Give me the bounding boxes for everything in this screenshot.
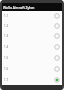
button[interactable]: 1.7: [2, 74, 62, 85]
button[interactable]: 1.5: [2, 52, 62, 63]
staticText: 1.1: [4, 14, 9, 18]
button[interactable]: 1.3: [2, 31, 62, 41]
staticText: Walla Aircraft Zylon: [3, 5, 35, 10]
staticText: 1.6: [4, 67, 9, 71]
staticText: 1.4: [4, 45, 9, 49]
staticText: 1.5: [4, 56, 9, 60]
button[interactable]: 1.4: [2, 41, 62, 52]
button[interactable]: Walla Aircraft Zylon: [2, 3, 62, 11]
staticText: 1.2: [4, 24, 9, 28]
button[interactable]: Toggle status: [54, 44, 60, 50]
button[interactable]: Toggle status: [54, 13, 60, 19]
button[interactable]: Toggle status: [54, 77, 60, 83]
button[interactable]: Toggle status: [54, 55, 60, 61]
button[interactable]: Toggle status: [54, 23, 60, 29]
button[interactable]: Toggle status: [54, 33, 60, 39]
staticText: 1.3: [4, 34, 9, 38]
button[interactable]: 1.2: [2, 21, 62, 31]
button[interactable]: Toggle status: [54, 66, 60, 72]
button[interactable]: 1.6: [2, 63, 62, 74]
staticText: 1.7: [4, 78, 9, 82]
button[interactable]: 1.1: [2, 11, 62, 21]
